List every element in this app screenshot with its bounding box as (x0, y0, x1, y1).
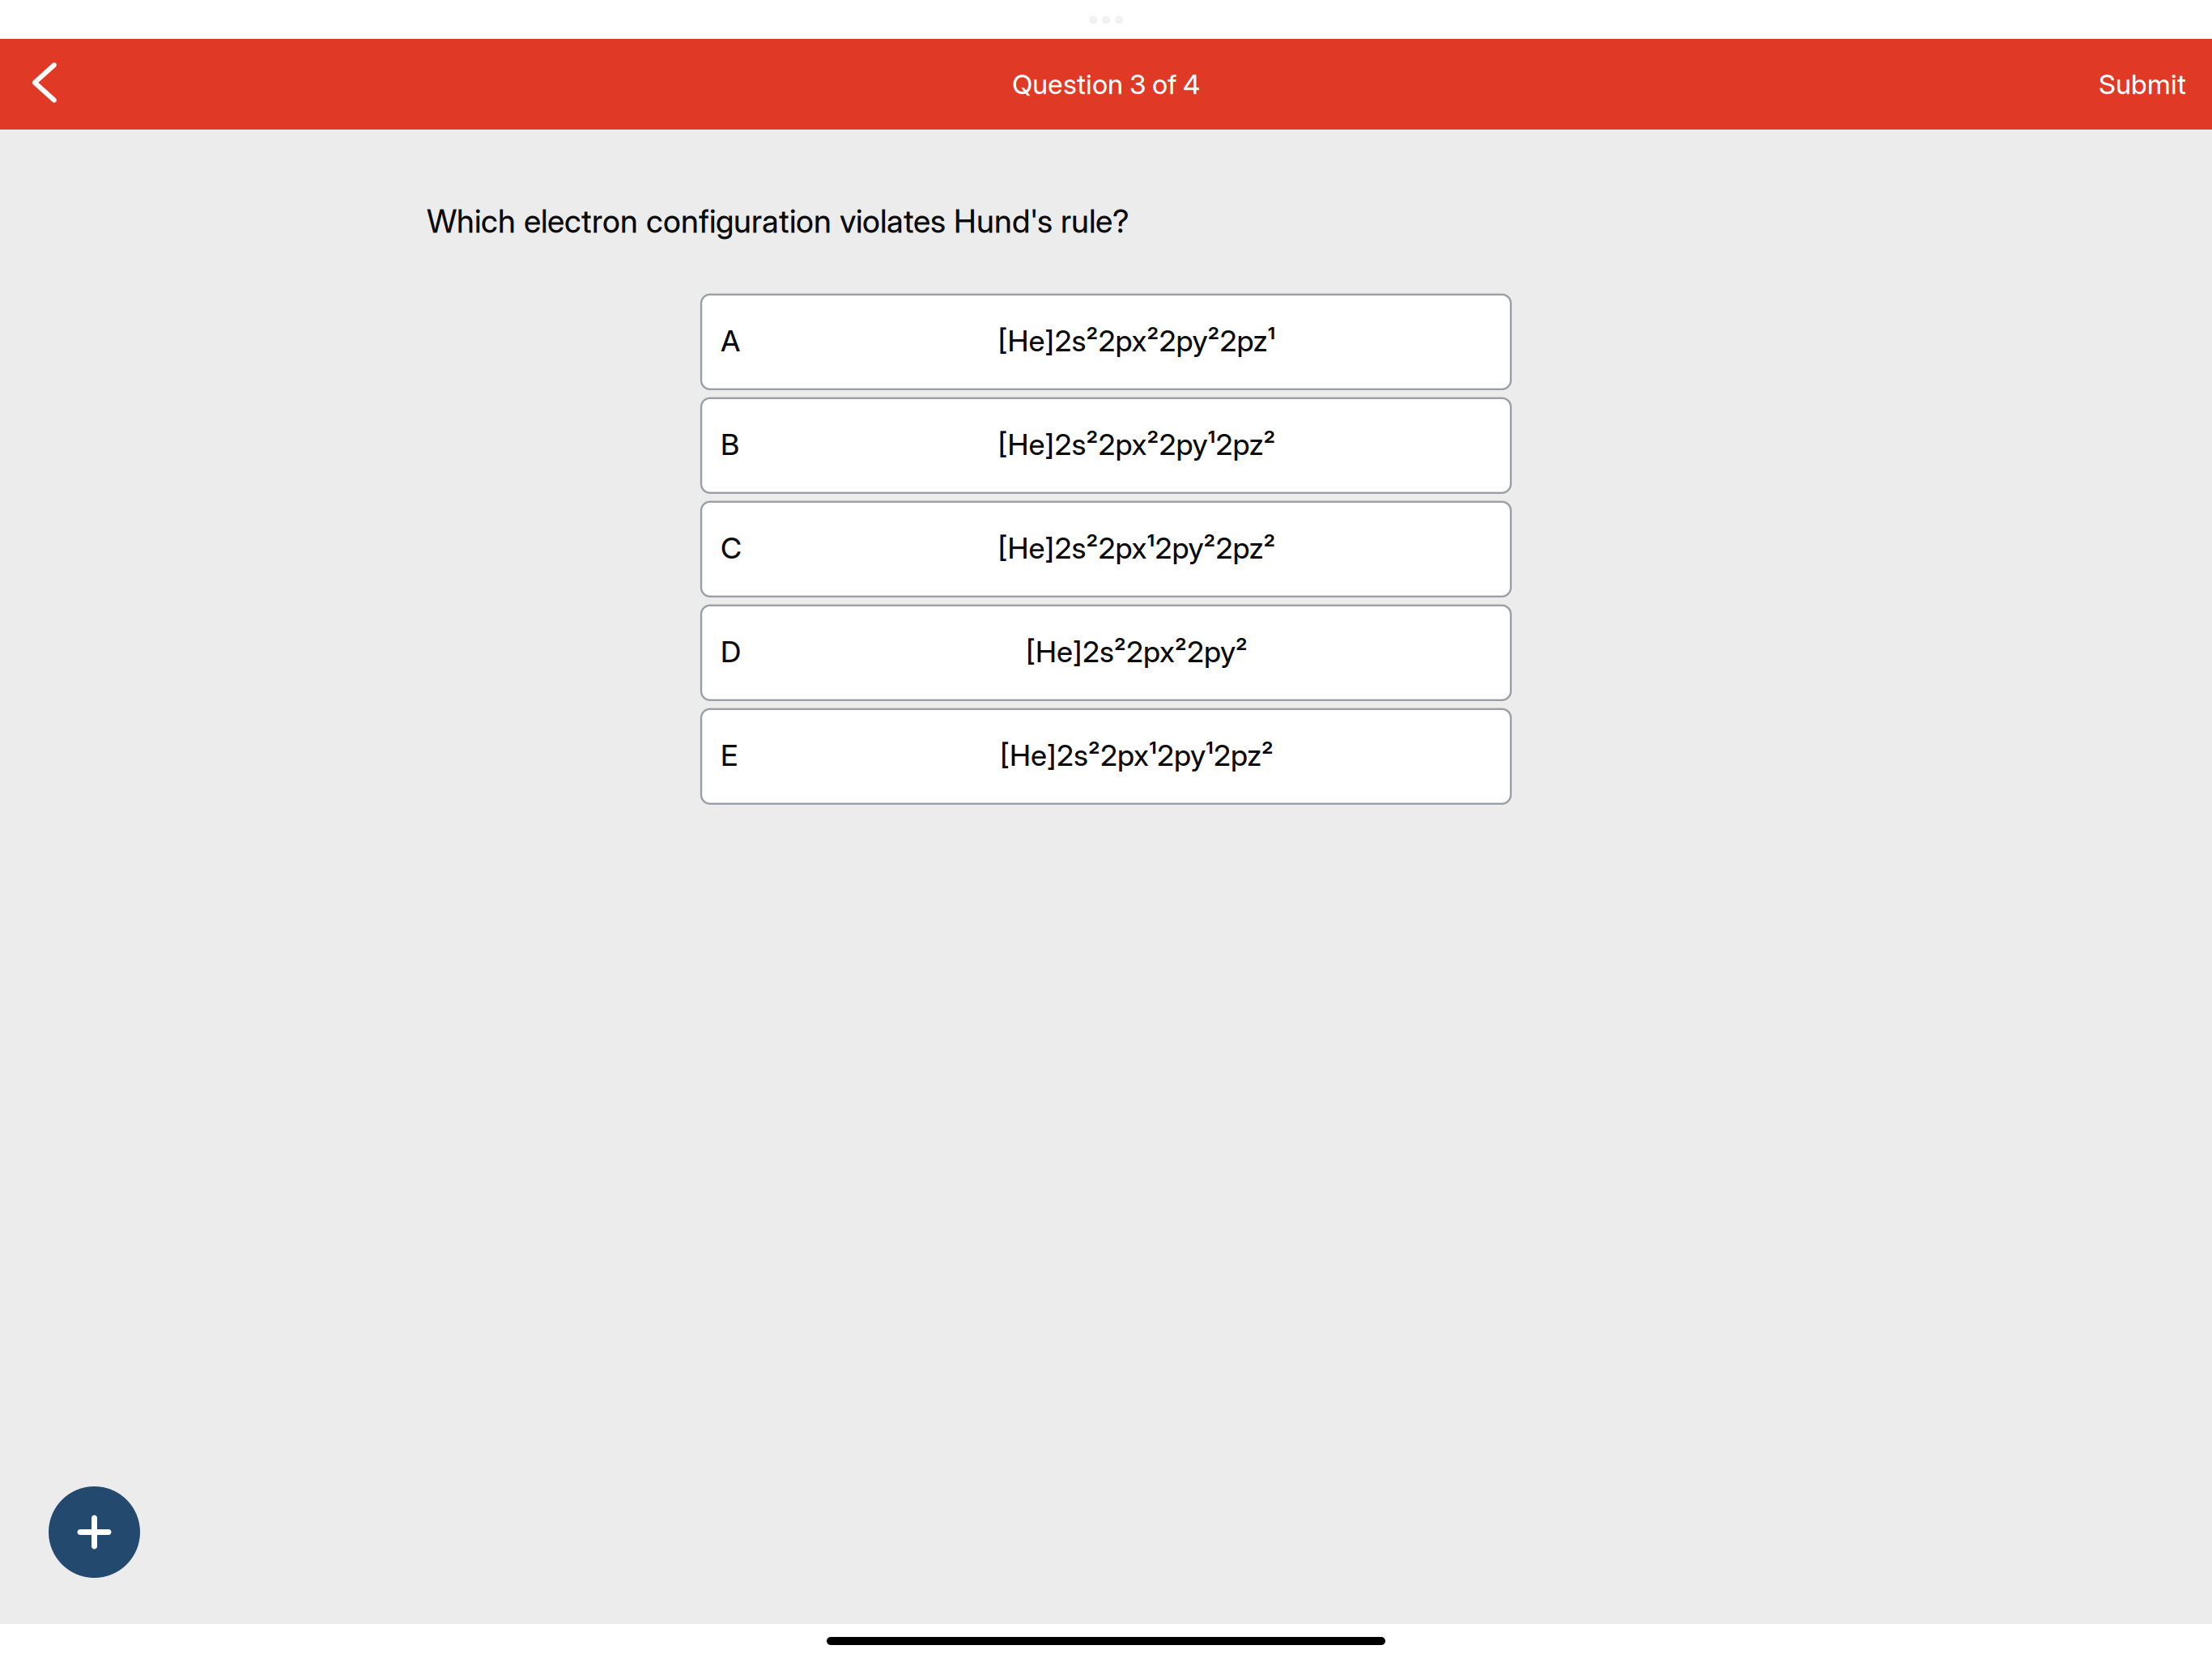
button[interactable]: A (701, 295, 1511, 389)
button[interactable]: Submit (2074, 39, 2212, 130)
staticText: [He]2s²2px²2py²2pz¹ (998, 323, 1276, 358)
button[interactable]: Back (0, 39, 82, 130)
button[interactable]: E (701, 709, 1511, 804)
button[interactable]: B (701, 398, 1511, 493)
staticText: Which electron configuration violates Hu… (427, 202, 1129, 240)
staticText: C (721, 530, 742, 566)
staticText: [He]2s²2px¹2py¹2pz² (1000, 738, 1274, 773)
button[interactable]: Add (49, 1486, 140, 1578)
staticText: B (721, 427, 739, 462)
staticText: A (721, 323, 740, 358)
staticText: Submit (2099, 68, 2186, 100)
staticText: [He]2s²2px¹2py²2pz² (998, 530, 1276, 566)
button[interactable]: C (701, 502, 1511, 596)
button[interactable]: D (701, 605, 1511, 700)
staticText: D (721, 634, 741, 669)
staticText: E (721, 738, 738, 773)
staticText: Question 3 of 4 (1012, 68, 1200, 100)
staticText: [He]2s²2px²2py² (1026, 634, 1248, 669)
staticText: [He]2s²2px²2py¹2pz² (998, 427, 1276, 462)
